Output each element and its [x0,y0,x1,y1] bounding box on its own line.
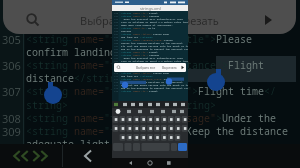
staticText: sensor the landing position of the aircr… [121,41,183,44]
staticText: file or altitude of about 1.5 meters aft… [121,59,188,62]
staticText: "t1"> [141,11,149,14]
button[interactable]: Undo redo [0,144,62,168]
staticText: </string> [140,74,153,77]
staticText: 290 [114,11,119,14]
staticText: name= [74,124,104,138]
staticText: ring> [186,98,216,112]
staticText: 308 [114,65,119,68]
staticText: name= [133,11,141,14]
staticText: Flight time [198,84,264,98]
staticText: "ti [104,32,122,46]
staticText: 301 [114,44,119,47]
button[interactable]: More options [256,8,280,32]
staticText: "tr [104,124,122,138]
staticText: its left and avoid falling into the poin… [121,44,188,47]
button[interactable]: Quote [163,144,203,168]
staticText: Please wind [153,71,169,74]
button[interactable]: Вырезать [164,10,223,31]
staticText: <string [121,26,133,29]
staticText: its left and avoid falling into the poin… [121,83,188,86]
staticText: 302 [114,47,119,50]
staticText: Выбрать все [136,66,156,70]
staticText: Under the [222,111,276,125]
staticText: <string [121,11,133,14]
staticText: name= [133,38,141,41]
staticText: down away from engine at "buildings" [121,62,173,65]
staticText: <string [121,53,133,56]
staticText: string> [26,98,68,112]
staticText: Вырезать [168,13,219,28]
staticText: < [122,45,128,59]
staticText: "to [104,58,122,72]
staticText: tance" [186,58,222,72]
staticText: </ [264,84,276,98]
staticText: 307 [114,62,119,65]
staticText: 314 [114,83,119,86]
staticText: Landing [149,53,160,56]
staticText: "t2"> [141,14,149,17]
staticText: 291 [114,14,119,17]
staticText: 306 [2,58,21,73]
staticText: "ti [104,84,122,98]
button[interactable]: Move right [113,144,163,168]
staticText: <string [26,58,74,72]
button[interactable]: Search [22,9,44,31]
staticText: " [186,84,192,98]
staticText: End of the building to prevent the aircr… [121,86,188,89]
staticText: 292 [114,17,119,20]
staticText: 307 [2,84,21,99]
staticText: name= [133,89,141,92]
staticText: name= [74,32,104,46]
staticText: <string [26,32,74,46]
staticText: <string [121,32,133,35]
staticText: Keep the distance [186,124,288,138]
staticText: name= [133,53,141,56]
staticText: <string [121,38,133,41]
staticText: > [210,32,216,46]
staticText: </string> [74,71,128,85]
staticText: 298 [114,35,119,38]
staticText: 309 [114,68,119,71]
staticText: <string [26,111,74,125]
staticText: <string [121,89,133,92]
staticText: name= [74,58,104,72]
staticText: > [192,84,198,98]
staticText: sage" [186,111,216,125]
staticText: <string [121,77,133,80]
staticText: and take off [121,74,140,77]
staticText: When the aircraft will automatically fin… [121,17,183,20]
staticText: 316 [114,89,119,92]
staticText: Выбрать все [80,13,147,28]
staticText: Hi to [148,26,156,29]
staticText: Please [164,38,173,41]
staticText: confirm landing [26,45,122,59]
staticText: Please [216,32,252,46]
staticText: > [146,26,148,29]
staticText: "t1"> [141,89,149,92]
staticText: name= [74,111,104,125]
staticText: name= [133,14,141,17]
staticText: Вырезать [162,66,177,70]
staticText: "landing_close"> [141,77,164,80]
staticText: Flight [149,11,158,14]
staticText: </string> [140,35,153,38]
staticText: Please [164,77,173,80]
staticText: 305 [2,32,21,47]
staticText: Landing [149,14,160,17]
staticText: <string [121,50,133,53]
staticText: Please wind [153,32,169,35]
staticText: <string [26,124,74,138]
staticText: name="t3" [133,65,146,68]
button[interactable]: Move left [63,144,113,168]
staticText: file or altitude of about 1.5 meters aft… [121,20,188,23]
staticText: sensor the landing position of the aircr… [121,80,183,83]
button[interactable]: Выбрать все [76,10,151,31]
staticText: and take off [121,35,140,38]
staticText: name= [133,77,141,80]
staticText: 308 [2,111,21,126]
staticText: "t1"> [141,50,149,53]
staticText: distance [26,71,74,85]
staticText: 310 [114,71,119,74]
staticText: "landing_close"> [141,38,164,41]
